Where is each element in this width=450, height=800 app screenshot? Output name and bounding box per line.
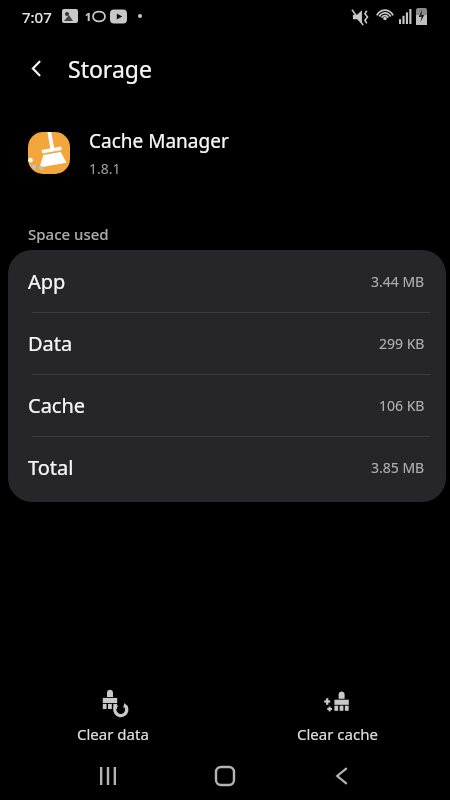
staticText: Clear data [77,724,149,744]
button[interactable] [16,48,56,88]
button[interactable] [205,756,245,796]
button[interactable] [322,756,362,796]
button[interactable]: Total [8,436,446,498]
button[interactable]: App [8,250,446,312]
button[interactable] [88,756,128,796]
button[interactable]: Cache [8,374,446,436]
staticText: 1 [85,9,92,24]
staticText: 299 KB [379,334,425,353]
staticText: App [28,268,66,295]
staticText: 3.85 MB [371,458,425,477]
staticText: 3.44 MB [371,272,425,291]
staticText: 7:07 [22,7,52,27]
button[interactable]: Data [8,312,446,374]
button[interactable]: Clear data [65,684,161,748]
staticText: Space used [28,224,109,244]
staticText: 106 KB [379,396,425,415]
staticText: Clear cache [297,724,378,744]
staticText: Total [28,454,74,481]
staticText: Storage [68,53,152,84]
staticText: Data [28,330,73,357]
staticText: 1.8.1 [89,159,121,178]
button[interactable]: Clear cache [285,684,390,748]
staticText: Cache [28,392,86,419]
staticText: Cache Manager [89,128,229,154]
